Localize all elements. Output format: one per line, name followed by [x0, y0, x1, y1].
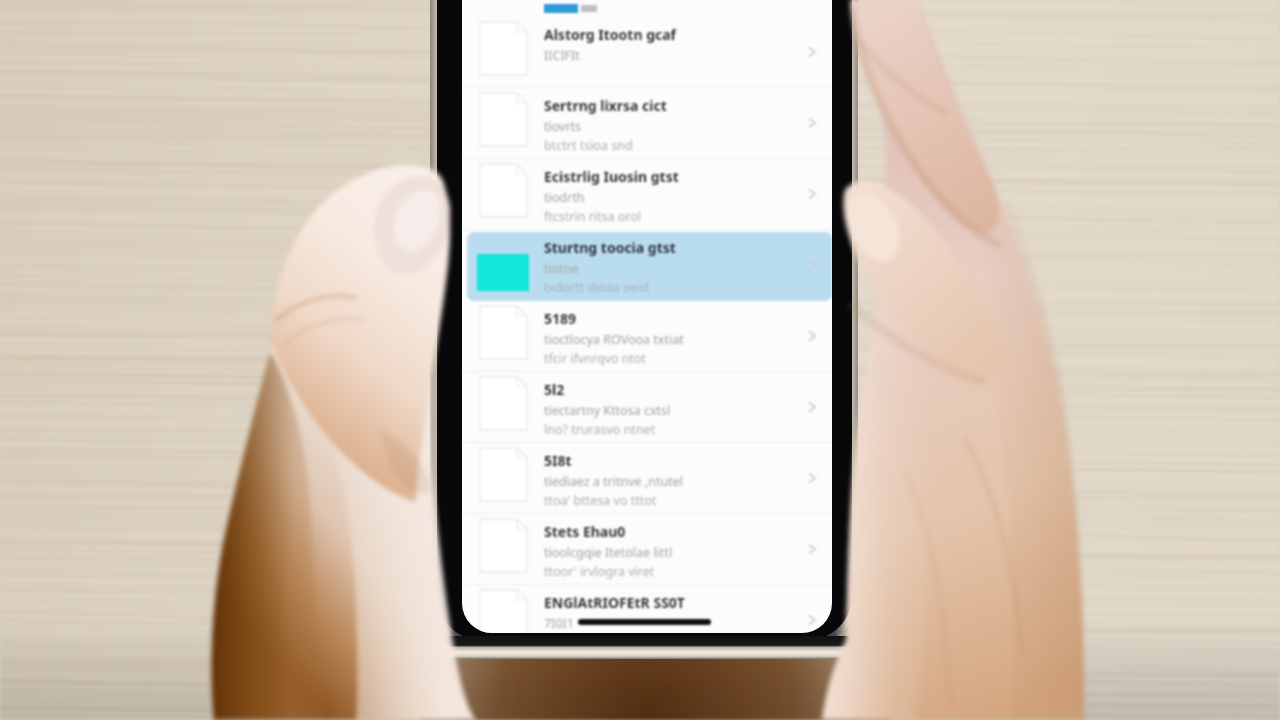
- button[interactable]: Sturtng toocia gtst: [462, 230, 832, 301]
- button[interactable]: Ecistrlig Iuosin gtst: [462, 159, 832, 230]
- button[interactable]: Stets Ehau0: [462, 514, 832, 585]
- staticText: ENGlAtRIOFEtR SS0T: [544, 593, 685, 612]
- button[interactable]: Open: [805, 116, 819, 130]
- staticText: 5I8t: [544, 451, 572, 470]
- staticText: tioctlocya ROVooa txtiat: [544, 331, 684, 348]
- staticText: 5l2: [544, 380, 565, 399]
- staticText: btctrt tsioa snd: [544, 137, 633, 154]
- staticText: Ecistrlig Iuosin gtst: [544, 167, 679, 186]
- staticText: Sturtng toocia gtst: [544, 238, 676, 257]
- staticText: Alstorg Itootn gcaf: [544, 25, 677, 44]
- button[interactable]: Alstorg Itootn gcaf: [462, 17, 832, 88]
- staticText: ttoor' irvlogra viret: [544, 563, 655, 580]
- staticText: 7I0I1: [544, 615, 574, 632]
- button[interactable]: 5I8t: [462, 443, 832, 514]
- button[interactable]: Open: [805, 613, 819, 627]
- button[interactable]: Open: [805, 258, 819, 272]
- staticText: tiectartny Kttosa cxtsl: [544, 402, 671, 419]
- staticText: tiovrts: [544, 118, 582, 135]
- staticText: ttoa' bttesa vo tttot: [544, 492, 657, 509]
- button[interactable]: 5l2: [462, 372, 832, 443]
- staticText: tiediaez a tritnve ,ntutel: [544, 473, 683, 490]
- button[interactable]: Open: [805, 471, 819, 485]
- staticText: lno? trurasvo ntnet: [544, 421, 656, 438]
- staticText: 5189: [544, 309, 577, 328]
- button[interactable]: Open: [805, 542, 819, 556]
- button[interactable]: Sertrng lixrsa cict: [462, 88, 832, 159]
- staticText: Sertrng lixrsa cict: [544, 96, 667, 115]
- button[interactable]: Open: [805, 400, 819, 414]
- staticText: tiodrth: [544, 189, 585, 206]
- staticText: txdortt dioaa oeid: [544, 279, 649, 296]
- staticText: ftcstrin ritsa orol: [544, 208, 642, 225]
- button[interactable]: ENGlAtRIOFEtR SS0T: [462, 585, 832, 633]
- button[interactable]: Open: [805, 187, 819, 201]
- button[interactable]: 5189: [462, 301, 832, 372]
- staticText: IICIFIt: [544, 47, 580, 64]
- staticText: tfcir ifvnrqvo ntot: [544, 350, 647, 367]
- staticText: tioolcgqie Itetolae littl: [544, 544, 673, 561]
- button[interactable]: Open: [805, 329, 819, 343]
- staticText: tiotne: [544, 260, 579, 277]
- button[interactable]: Open: [805, 45, 819, 59]
- staticText: Stets Ehau0: [544, 522, 626, 541]
